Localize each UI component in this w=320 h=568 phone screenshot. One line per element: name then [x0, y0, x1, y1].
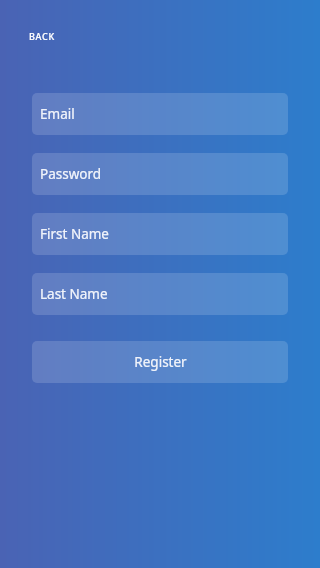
- button[interactable]: Password: [32, 153, 288, 195]
- button[interactable]: First Name: [32, 213, 288, 255]
- staticText: Email: [40, 105, 75, 123]
- staticText: BACK: [29, 30, 55, 42]
- staticText: First Name: [40, 225, 109, 243]
- staticText: Last Name: [40, 285, 108, 303]
- button[interactable]: Register: [32, 341, 288, 383]
- button[interactable]: Email: [32, 93, 288, 135]
- staticText: Password: [40, 165, 102, 183]
- staticText: Register: [134, 353, 187, 371]
- button[interactable]: Last Name: [32, 273, 288, 315]
- button[interactable]: Back: [22, 24, 62, 48]
